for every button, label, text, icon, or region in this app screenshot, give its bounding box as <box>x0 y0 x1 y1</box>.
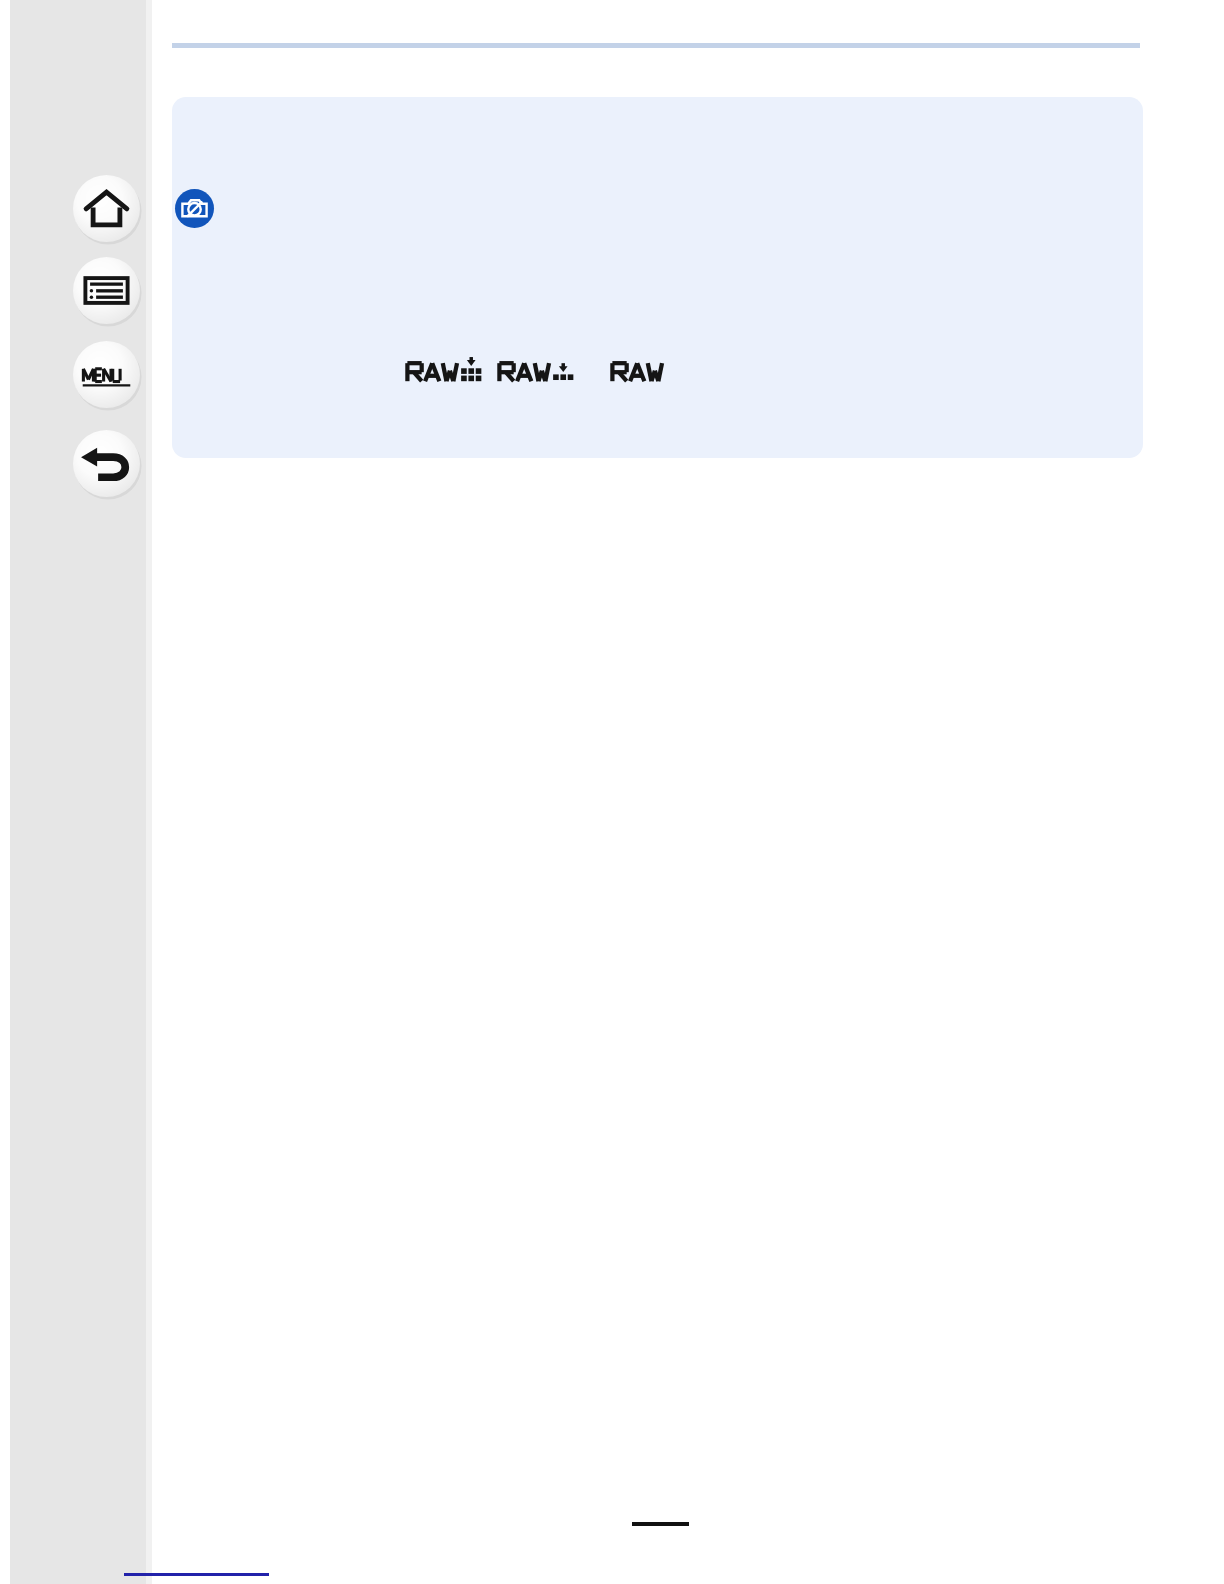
button[interactable]: Back <box>73 430 140 497</box>
button[interactable]: List <box>73 257 140 324</box>
button[interactable]: Menu <box>73 341 140 408</box>
button[interactable]: Home <box>73 175 140 242</box>
button[interactable]: Not available <box>175 189 214 228</box>
